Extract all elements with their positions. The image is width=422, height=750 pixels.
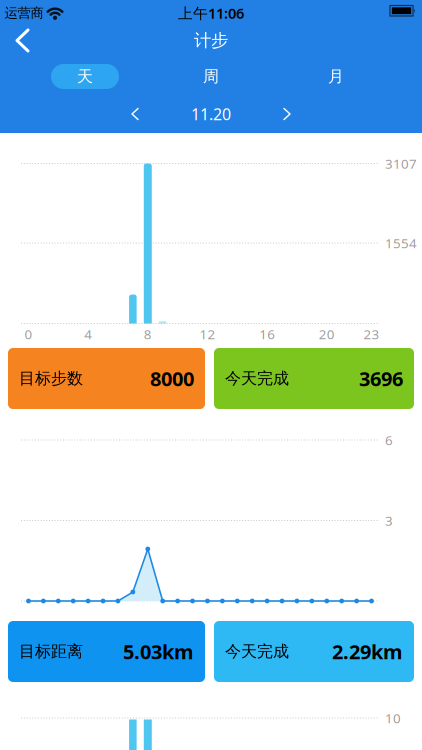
staticText: 天 [77,67,93,86]
button[interactable]: 周 [177,64,245,89]
staticText: 12 [199,325,215,343]
staticText: 11.20 [191,103,231,125]
staticText: 3107 [385,155,417,172]
button[interactable]: Previous day [132,108,138,119]
staticText: 8000 [150,365,194,392]
staticText: 2.29km [332,638,403,665]
staticText: 3696 [359,365,403,392]
staticText: 周 [203,67,219,86]
staticText: 3 [385,512,393,529]
staticText: 10 [385,709,401,727]
staticText: 今天完成 [225,642,289,661]
button[interactable]: 月 [302,64,370,89]
staticText: 今天完成 [225,369,289,388]
staticText: 16 [259,325,275,343]
staticText: 计步 [194,30,228,51]
staticText: 月 [328,67,344,86]
staticText: 5.03km [123,638,194,665]
button[interactable]: 天 [51,64,119,89]
staticText: 上午11:06 [178,3,244,23]
staticText: 8 [144,325,152,343]
staticText: 6 [385,431,393,449]
staticText: 23 [363,325,379,343]
staticText: 0 [24,325,32,343]
staticText: 20 [319,325,335,343]
staticText: 1554 [385,234,417,252]
staticText: 运营商 [4,5,43,21]
staticText: 目标距离 [19,642,83,661]
button[interactable]: Back [17,30,28,51]
staticText: 目标步数 [19,369,83,388]
button[interactable]: Next day [284,108,290,119]
staticText: 4 [84,325,92,343]
